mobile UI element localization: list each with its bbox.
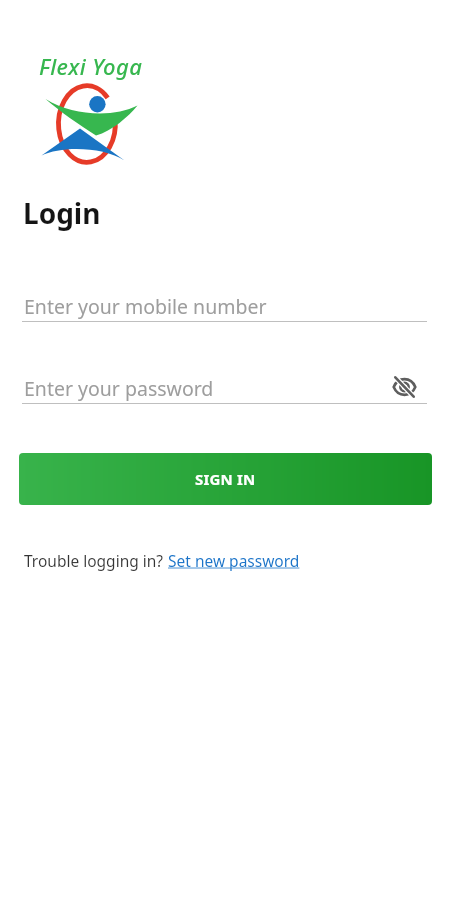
button[interactable]: Show password: [388, 371, 420, 403]
staticText: Enter your password: [24, 375, 214, 402]
button[interactable]: SIGN IN: [19, 453, 432, 505]
staticText: Enter your mobile number: [24, 293, 267, 320]
staticText: SIGN IN: [195, 469, 256, 489]
staticText: Flexi Yoga: [39, 51, 143, 81]
button[interactable]: Set new password: [168, 550, 300, 571]
staticText: Login: [23, 194, 101, 232]
staticText: Trouble logging in?: [24, 550, 168, 571]
